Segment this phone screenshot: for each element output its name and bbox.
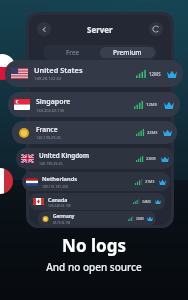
other: Premium <box>159 179 166 185</box>
staticText: France <box>36 125 58 134</box>
other: Premium <box>161 156 169 162</box>
staticText: 34MS <box>142 199 151 204</box>
button[interactable]: France <box>12 121 177 144</box>
staticText: Free <box>66 48 80 57</box>
staticText: Server <box>87 24 113 35</box>
staticText: 21MS <box>145 179 155 184</box>
staticText: 32MS <box>146 156 156 161</box>
other: Premium <box>167 70 177 78</box>
staticText: 146.248.63.158 <box>48 204 71 208</box>
staticText: 12MS <box>146 102 158 108</box>
staticText: United States <box>34 65 83 75</box>
staticText: Netherlands <box>42 175 78 183</box>
button[interactable]: Free <box>45 47 100 58</box>
staticText: 180.101.181.258 <box>42 184 68 189</box>
button[interactable]: United Kingdom <box>16 148 174 169</box>
other: Premium <box>164 101 174 109</box>
staticText: 85.75.92.158 <box>53 221 71 225</box>
staticText: 20MS <box>136 217 144 221</box>
button[interactable]: Germany <box>38 211 156 226</box>
staticText: 149.28.122.62 <box>34 76 62 82</box>
staticText: Canada <box>48 196 68 203</box>
staticText: And no open source <box>46 260 142 274</box>
other: Premium <box>155 199 161 204</box>
button[interactable]: Premium <box>100 47 155 58</box>
staticText: 120.190.29.26 <box>39 161 63 166</box>
staticText: 22MS <box>147 130 158 135</box>
staticText: Premium <box>113 48 142 57</box>
other: Premium <box>163 129 172 136</box>
button[interactable]: Canada <box>29 193 165 210</box>
staticText: 134.202.65.135 <box>36 108 65 113</box>
button[interactable]: Refresh <box>149 22 163 36</box>
other: Premium <box>147 216 153 221</box>
staticText: Germany <box>53 213 75 220</box>
staticText: Singapore <box>36 97 71 107</box>
button[interactable]: Netherlands <box>22 172 170 191</box>
staticText: No logs <box>62 234 126 257</box>
staticText: 12MS <box>149 71 161 77</box>
button[interactable]: United States <box>5 60 183 87</box>
button[interactable]: Back <box>37 22 51 36</box>
staticText: 120.190.29.26 <box>36 135 61 140</box>
staticText: United Kingdom <box>39 151 90 160</box>
button[interactable]: Singapore <box>8 92 180 117</box>
